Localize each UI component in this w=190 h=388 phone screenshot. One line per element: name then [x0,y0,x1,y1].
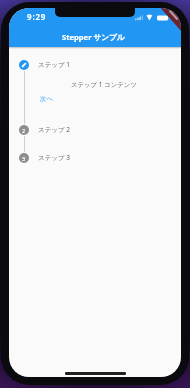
staticText: ステップ 3 [38,153,71,162]
button[interactable]: 3 [9,148,181,168]
staticText: ステップ 2 [38,125,71,134]
staticText: Stepper サンプル [62,32,125,42]
staticText: ステップ 1 コンテンツ [71,80,137,89]
staticText: 次へ [40,95,54,103]
staticText: ステップ 1 [38,60,71,69]
button[interactable]: 2 [9,120,181,140]
button[interactable]: 次へ [36,92,58,106]
staticText: 2 [22,127,26,134]
button[interactable]: ステップ 1 [9,55,181,75]
staticText: 9:29 [27,11,47,22]
staticText: 3 [22,155,26,162]
